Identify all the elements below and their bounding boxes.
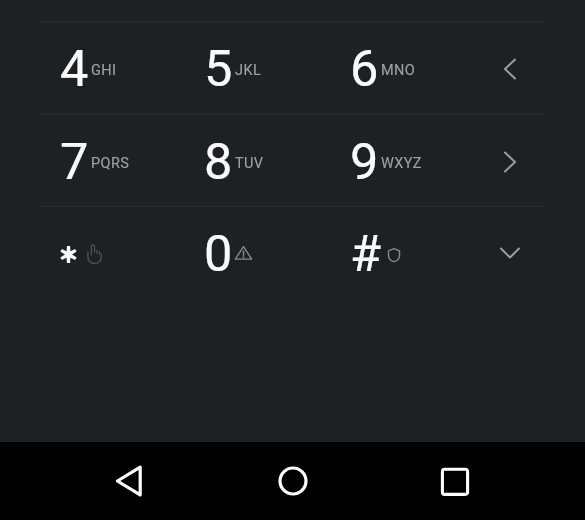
button[interactable]: 7 — [0, 115, 204, 208]
staticText: 9 — [350, 132, 379, 191]
staticText: 7 — [60, 132, 89, 191]
button[interactable]: 5 — [204, 22, 350, 115]
staticText: # — [350, 224, 382, 283]
button[interactable]: Recents — [429, 442, 481, 520]
button[interactable]: # — [350, 207, 480, 300]
staticText: JKL — [235, 62, 262, 79]
button[interactable]: 9 — [350, 115, 480, 208]
staticText: PQRS — [91, 155, 130, 172]
button[interactable]: 4 — [0, 22, 204, 115]
button[interactable]: 8 — [204, 115, 350, 208]
staticText: 5 — [204, 39, 233, 98]
staticText: 6 — [350, 39, 379, 98]
button[interactable]: Next — [486, 138, 534, 186]
staticText: 0 — [204, 224, 233, 283]
staticText: 8 — [204, 132, 233, 191]
staticText: GHI — [91, 62, 117, 79]
staticText: TUV — [235, 155, 264, 172]
button[interactable] — [0, 207, 204, 300]
button[interactable]: 6 — [350, 22, 480, 115]
staticText: MNO — [381, 62, 416, 79]
button[interactable]: Previous — [486, 45, 534, 93]
staticText: WXYZ — [381, 155, 422, 172]
button[interactable]: Hide keypad — [486, 229, 534, 277]
staticText: 4 — [60, 39, 89, 98]
button[interactable]: 0 — [204, 207, 350, 300]
button[interactable]: Back — [104, 442, 156, 520]
button[interactable]: Home — [267, 442, 319, 520]
